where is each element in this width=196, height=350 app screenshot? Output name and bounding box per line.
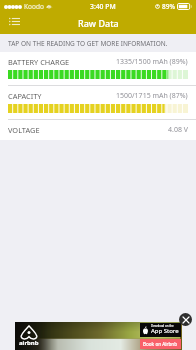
staticText: 4.08 V bbox=[168, 125, 188, 135]
staticText: 3:40 PM bbox=[90, 2, 116, 11]
staticText: 1335/1500 mAh (89%) bbox=[116, 57, 188, 67]
button[interactable]: BATTERY CHARGE bbox=[0, 52, 196, 85]
staticText: BATTERY CHARGE bbox=[8, 57, 70, 67]
button[interactable]: airbnb bbox=[15, 322, 182, 350]
staticText: Book on Airbnb bbox=[143, 341, 178, 347]
button[interactable]: VOLTAGE bbox=[0, 120, 196, 140]
staticText: Koodo bbox=[24, 2, 44, 11]
staticText: Download on the bbox=[151, 324, 174, 328]
staticText: VOLTAGE bbox=[8, 125, 40, 135]
staticText: Raw Data bbox=[78, 17, 119, 29]
staticText: airbnb bbox=[19, 339, 39, 347]
button[interactable]: CAPACITY bbox=[0, 86, 196, 119]
staticText: 89% bbox=[162, 2, 175, 11]
button[interactable]: Menu bbox=[0, 13, 28, 34]
button[interactable]: Close ad bbox=[179, 313, 192, 326]
staticText: App Store bbox=[151, 327, 179, 335]
staticText: TAP ON THE READING TO GET MORE INFORMATI… bbox=[8, 39, 168, 48]
staticText: 1500/1715 mAh (87%) bbox=[116, 91, 188, 101]
staticText: CAPACITY bbox=[8, 91, 42, 101]
